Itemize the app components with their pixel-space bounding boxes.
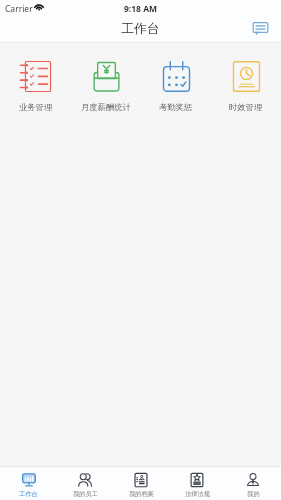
button[interactable]: 我的档案 bbox=[113, 467, 169, 500]
staticText: 考勤奖惩 bbox=[159, 102, 193, 112]
button[interactable]: 工作台 bbox=[0, 467, 57, 500]
staticText: 工作台 bbox=[19, 490, 38, 498]
staticText: 我的 bbox=[247, 490, 260, 498]
staticText: 我的员工 bbox=[73, 490, 98, 498]
staticText: 我的档案 bbox=[129, 490, 154, 498]
staticText: 业务管理 bbox=[19, 102, 53, 112]
button[interactable]: 我的 bbox=[225, 467, 281, 500]
staticText: 时效管理 bbox=[229, 102, 263, 112]
button[interactable]: 考勤奖惩 bbox=[141, 43, 211, 121]
staticText: 法律法规 bbox=[185, 490, 210, 498]
button[interactable]: 时效管理 bbox=[211, 43, 281, 121]
button[interactable]: 法律法规 bbox=[169, 467, 225, 500]
staticText: Carrier bbox=[5, 3, 33, 15]
button[interactable]: 我的员工 bbox=[57, 467, 113, 500]
staticText: 9:18 AM bbox=[124, 3, 158, 15]
staticText: 月度薪酬统计 bbox=[81, 102, 131, 112]
staticText: 工作台 bbox=[121, 20, 160, 36]
button[interactable]: 业务管理 bbox=[0, 43, 71, 121]
button[interactable]: 月度薪酬统计 bbox=[71, 43, 141, 121]
button[interactable]: Messages bbox=[252, 20, 269, 37]
